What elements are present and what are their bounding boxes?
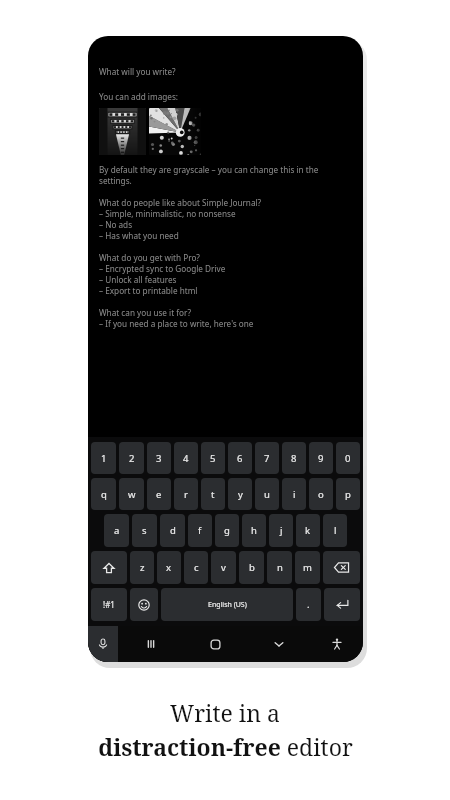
button[interactable]: p — [336, 478, 360, 510]
staticText: r — [184, 488, 188, 501]
staticText: w — [128, 488, 136, 501]
staticText: 6 — [237, 452, 243, 465]
staticText: a — [114, 524, 120, 537]
button[interactable]: 2 — [119, 442, 144, 474]
staticText: k — [305, 524, 311, 537]
button[interactable]: j — [269, 514, 293, 547]
staticText: 0 — [345, 452, 351, 465]
button[interactable]: 8 — [282, 442, 306, 474]
button[interactable]: d — [160, 514, 185, 547]
button[interactable]: Back — [247, 626, 311, 662]
staticText: By default they are grayscale – you can … — [99, 164, 319, 175]
staticText: q — [101, 488, 107, 501]
staticText: – Encrypted sync to Google Drive — [99, 263, 226, 274]
staticText: 8 — [291, 452, 297, 465]
button[interactable]: m — [295, 551, 320, 584]
staticText: You can add images: — [99, 91, 179, 102]
button[interactable]: t — [201, 478, 225, 510]
button[interactable]: z — [130, 551, 154, 584]
button[interactable]: 7 — [255, 442, 279, 474]
staticText: c — [194, 561, 199, 574]
button[interactable]: 4 — [174, 442, 198, 474]
button[interactable]: Voice input — [88, 626, 118, 662]
staticText: What do you get with Pro? — [99, 252, 200, 263]
button[interactable]: h — [242, 514, 266, 547]
staticText: – Export to printable html — [99, 285, 198, 296]
button[interactable]: Backspace — [323, 551, 360, 584]
staticText: b — [249, 561, 255, 574]
staticText: y — [238, 488, 243, 501]
button[interactable]: Recents — [118, 626, 183, 662]
button[interactable]: Image 1 — [99, 108, 146, 155]
staticText: p — [345, 488, 351, 501]
staticText: z — [140, 561, 145, 574]
button[interactable]: o — [309, 478, 333, 510]
button[interactable]: . — [296, 588, 321, 621]
button[interactable]: k — [296, 514, 320, 547]
staticText: 7 — [264, 452, 270, 465]
button[interactable]: f — [188, 514, 212, 547]
button[interactable]: !#1 — [91, 588, 127, 621]
staticText: . — [307, 598, 310, 611]
staticText: j — [280, 524, 283, 537]
button[interactable]: 0 — [336, 442, 360, 474]
staticText: f — [198, 524, 202, 537]
button[interactable]: 6 — [228, 442, 252, 474]
button[interactable]: g — [215, 514, 239, 547]
button[interactable]: a — [104, 514, 129, 547]
button[interactable]: c — [184, 551, 208, 584]
button[interactable]: Enter — [324, 588, 360, 621]
staticText: 5 — [210, 452, 216, 465]
staticText: v — [221, 561, 226, 574]
staticText: m — [303, 561, 312, 574]
button[interactable]: e — [147, 478, 171, 510]
button[interactable]: w — [119, 478, 144, 510]
staticText: i — [293, 488, 296, 501]
button[interactable]: s — [132, 514, 157, 547]
button[interactable]: r — [174, 478, 198, 510]
button[interactable]: Emoji — [130, 588, 158, 621]
button[interactable]: i — [282, 478, 306, 510]
staticText: d — [170, 524, 176, 537]
staticText: – Unlock all features — [99, 274, 177, 285]
button[interactable]: 5 — [201, 442, 225, 474]
button[interactable]: l — [323, 514, 347, 547]
staticText: u — [264, 488, 270, 501]
staticText: x — [166, 561, 172, 574]
staticText: – If you need a place to write, here's o… — [99, 318, 254, 329]
staticText: n — [277, 561, 283, 574]
staticText: – Simple, minimalistic, no nonsense — [99, 208, 236, 219]
button[interactable]: Image 2 — [149, 108, 201, 155]
staticText: 3 — [156, 452, 162, 465]
staticText: settings. — [99, 175, 132, 186]
staticText: What do people like about Simple Journal… — [99, 197, 262, 208]
button[interactable]: 3 — [147, 442, 171, 474]
staticText: t — [211, 488, 215, 501]
button[interactable]: n — [267, 551, 292, 584]
staticText: l — [334, 524, 337, 537]
button[interactable]: u — [255, 478, 279, 510]
button[interactable]: Accessibility — [311, 626, 363, 662]
button[interactable]: 1 — [91, 442, 116, 474]
staticText: What will you write? — [99, 66, 176, 77]
button[interactable]: v — [211, 551, 236, 584]
staticText: !#1 — [103, 599, 115, 610]
staticText: 4 — [183, 452, 189, 465]
button[interactable]: 9 — [309, 442, 333, 474]
staticText: – Has what you need — [99, 230, 179, 241]
button[interactable]: q — [91, 478, 116, 510]
staticText: 9 — [318, 452, 324, 465]
button[interactable]: English (US) — [161, 588, 293, 621]
button[interactable]: x — [157, 551, 181, 584]
button[interactable]: y — [228, 478, 252, 510]
button[interactable]: What will you write? — [88, 36, 363, 437]
button[interactable]: Shift — [91, 551, 127, 584]
button[interactable]: b — [239, 551, 264, 584]
staticText: o — [318, 488, 324, 501]
staticText: distraction-free editor — [98, 731, 353, 762]
staticText: s — [142, 524, 147, 537]
staticText: 1 — [101, 452, 107, 465]
staticText: What can you use it for? — [99, 307, 192, 318]
button[interactable]: Home — [183, 626, 247, 662]
staticText: – No ads — [99, 219, 133, 230]
